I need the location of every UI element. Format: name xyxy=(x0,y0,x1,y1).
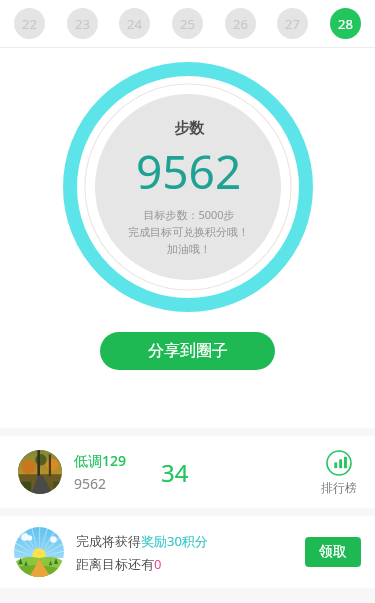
button[interactable]: 25 xyxy=(172,8,203,39)
button[interactable]: 28 xyxy=(330,8,361,39)
other: 排行榜 xyxy=(326,450,352,476)
button[interactable]: 排行榜 xyxy=(321,450,357,495)
staticText: 26 xyxy=(233,15,248,33)
staticText: 34 xyxy=(161,456,189,489)
staticText: 领取 xyxy=(319,543,347,561)
staticText: 9562 xyxy=(74,474,107,493)
button[interactable]: 23 xyxy=(67,8,98,39)
staticText: 27 xyxy=(285,15,300,33)
staticText: 低调129 xyxy=(74,451,127,470)
staticText: 目标步数：5000步 xyxy=(143,207,235,222)
button[interactable]: 22 xyxy=(14,8,45,39)
staticText: 28 xyxy=(338,15,353,33)
staticText: 步数 xyxy=(174,119,204,138)
staticText: 排行榜 xyxy=(321,480,357,495)
button[interactable]: 27 xyxy=(277,8,308,39)
button[interactable]: 26 xyxy=(225,8,256,39)
button[interactable]: 低调129 xyxy=(0,436,375,508)
staticText: 24 xyxy=(127,15,142,33)
staticText: 23 xyxy=(75,15,90,33)
button[interactable]: 分享到圈子 xyxy=(100,332,275,370)
staticText: 完成将获得奖励30积分 xyxy=(76,532,208,550)
button[interactable]: 24 xyxy=(119,8,150,39)
staticText: 9562 xyxy=(136,140,242,203)
button[interactable]: 领取 xyxy=(305,537,361,567)
staticText: 22 xyxy=(22,15,37,33)
staticText: 距离目标还有0 xyxy=(76,555,162,573)
staticText: 25 xyxy=(180,15,195,33)
staticText: 完成目标可兑换积分哦！ xyxy=(128,225,249,239)
staticText: 加油哦！ xyxy=(167,242,211,256)
staticText: 分享到圈子 xyxy=(148,341,228,361)
